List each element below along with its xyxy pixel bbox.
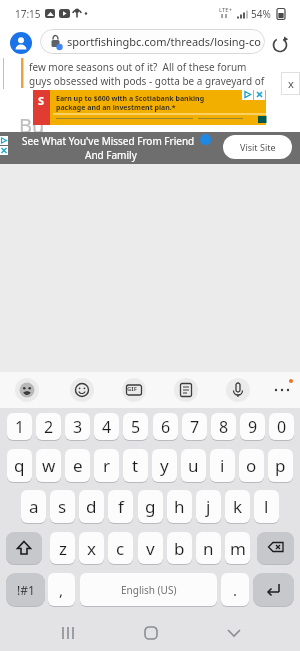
staticText: English (US): [121, 583, 177, 597]
button[interactable]: 0: [269, 413, 294, 440]
staticText: 5: [131, 416, 141, 438]
button[interactable]: n: [196, 532, 221, 564]
staticText: 6: [161, 416, 171, 438]
staticText: And Family: [85, 148, 137, 162]
button[interactable]: ,: [48, 573, 75, 606]
button[interactable]: [271, 36, 289, 54]
staticText: x: [288, 76, 294, 91]
staticText: m: [230, 537, 246, 560]
button[interactable]: 5: [123, 413, 148, 440]
staticText: 1: [15, 416, 25, 438]
staticText: p: [275, 454, 286, 477]
staticText: y: [160, 454, 169, 477]
staticText: q: [14, 454, 25, 477]
button[interactable]: x: [281, 72, 300, 95]
staticText: LTE+: [219, 6, 233, 14]
staticText: c: [116, 537, 125, 560]
button[interactable]: y: [152, 449, 177, 482]
button[interactable]: See What You've Missed From Friend: [0, 132, 300, 164]
button[interactable]: 3: [65, 413, 90, 440]
button[interactable]: [15, 378, 39, 402]
button[interactable]: [253, 573, 294, 606]
staticText: h: [174, 495, 185, 518]
staticText: 4: [102, 416, 112, 438]
button[interactable]: 2: [36, 413, 61, 440]
staticText: ,: [59, 580, 64, 600]
staticText: 9: [248, 416, 258, 438]
button[interactable]: S: [33, 90, 266, 125]
button[interactable]: v: [138, 532, 163, 564]
button[interactable]: 4: [94, 413, 119, 440]
button[interactable]: g: [138, 490, 163, 523]
button[interactable]: !#1: [6, 573, 45, 606]
staticText: See What You've Missed From Friend: [22, 134, 195, 148]
staticText: e: [73, 454, 83, 477]
button[interactable]: q: [7, 449, 32, 482]
button[interactable]: 1: [7, 413, 32, 440]
button[interactable]: 7: [182, 413, 207, 440]
button[interactable]: [53, 619, 81, 647]
button[interactable]: [136, 619, 164, 647]
button[interactable]: w: [36, 449, 61, 482]
staticText: sportfishingbc.com/threads/losing-co: [67, 34, 261, 49]
button[interactable]: e: [65, 449, 90, 482]
staticText: 54%: [251, 7, 271, 21]
button[interactable]: English (US): [80, 573, 217, 606]
staticText: s: [58, 495, 67, 518]
button[interactable]: [70, 378, 94, 402]
button[interactable]: [122, 378, 146, 402]
staticText: 8: [219, 416, 229, 438]
staticText: v: [146, 537, 155, 560]
staticText: k: [233, 495, 243, 518]
button[interactable]: j: [196, 490, 221, 523]
staticText: Visit Site: [240, 141, 276, 153]
button[interactable]: [219, 619, 247, 647]
button[interactable]: c: [108, 532, 133, 564]
staticText: z: [59, 537, 67, 560]
staticText: few more seasons out of it? All of these…: [29, 60, 247, 74]
button[interactable]: [257, 532, 294, 564]
button[interactable]: z: [50, 532, 75, 564]
button[interactable]: 9: [240, 413, 265, 440]
button[interactable]: sportfishingbc.com/threads/losing-co: [40, 29, 265, 54]
button[interactable]: [270, 378, 294, 402]
button[interactable]: k: [225, 490, 250, 523]
staticText: !#1: [17, 582, 35, 598]
staticText: f: [118, 495, 124, 518]
button[interactable]: a: [21, 490, 46, 523]
button[interactable]: [174, 378, 198, 402]
button[interactable]: Visit Site: [223, 135, 292, 159]
button[interactable]: x: [79, 532, 104, 564]
button[interactable]: b: [167, 532, 192, 564]
button[interactable]: u: [181, 449, 206, 482]
button[interactable]: [6, 532, 42, 564]
button[interactable]: s: [50, 490, 75, 523]
staticText: u: [188, 454, 199, 477]
staticText: 2: [44, 416, 54, 438]
button[interactable]: [10, 32, 32, 54]
staticText: .: [233, 580, 238, 600]
button[interactable]: i: [210, 449, 235, 482]
staticText: d: [86, 495, 97, 518]
staticText: x: [87, 537, 96, 560]
button[interactable]: 6: [153, 413, 178, 440]
button[interactable]: [226, 378, 250, 402]
staticText: t: [132, 454, 139, 477]
button[interactable]: r: [94, 449, 119, 482]
button[interactable]: d: [79, 490, 104, 523]
button[interactable]: o: [239, 449, 264, 482]
staticText: guys obsessed with pods - gotta be a gra…: [29, 74, 265, 88]
button[interactable]: l: [254, 490, 279, 523]
staticText: GIF: [127, 385, 137, 393]
staticText: l: [264, 495, 269, 518]
staticText: i: [220, 454, 225, 477]
button[interactable]: p: [268, 449, 293, 482]
button[interactable]: h: [167, 490, 192, 523]
button[interactable]: f: [108, 490, 133, 523]
button[interactable]: t: [123, 449, 148, 482]
button[interactable]: m: [225, 532, 250, 564]
staticText: g: [145, 495, 156, 518]
button[interactable]: 8: [211, 413, 236, 440]
staticText: n: [203, 537, 214, 560]
button[interactable]: .: [221, 573, 249, 606]
